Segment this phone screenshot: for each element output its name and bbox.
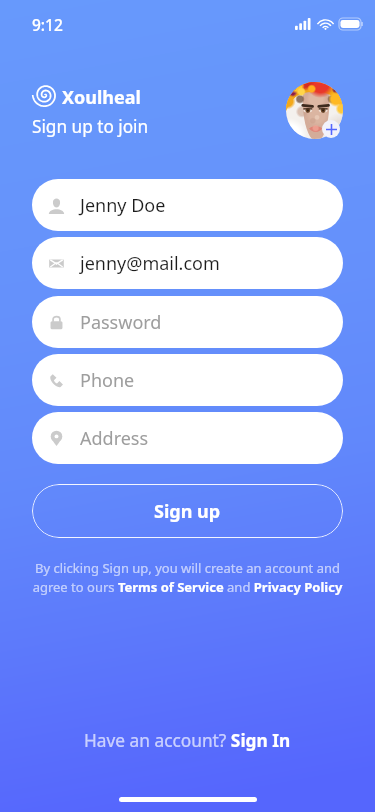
button[interactable]: Add profile photo	[286, 82, 343, 139]
staticText: Phone	[80, 368, 135, 393]
button[interactable]: Phone	[32, 354, 343, 406]
button[interactable]: Address	[32, 412, 343, 464]
staticText: By clicking Sign up, you will create an …	[32, 559, 343, 596]
staticText: 9:12	[32, 14, 63, 35]
staticText: Password	[80, 310, 162, 335]
staticText: Address	[80, 426, 149, 451]
button[interactable]: Sign up	[32, 484, 343, 538]
staticText: Have an account? Sign In	[84, 729, 291, 753]
staticText: jenny@mail.com	[80, 251, 220, 276]
button[interactable]: Jenny Doe	[32, 179, 343, 231]
staticText: Sign up to join	[32, 115, 149, 138]
button[interactable]: Password	[32, 296, 343, 348]
button[interactable]: jenny@mail.com	[32, 237, 343, 289]
button[interactable]: Have an account? Sign In	[72, 723, 303, 759]
staticText: Jenny Doe	[80, 193, 166, 218]
staticText: Xoulheal	[62, 85, 141, 110]
staticText: Sign up	[154, 499, 221, 524]
